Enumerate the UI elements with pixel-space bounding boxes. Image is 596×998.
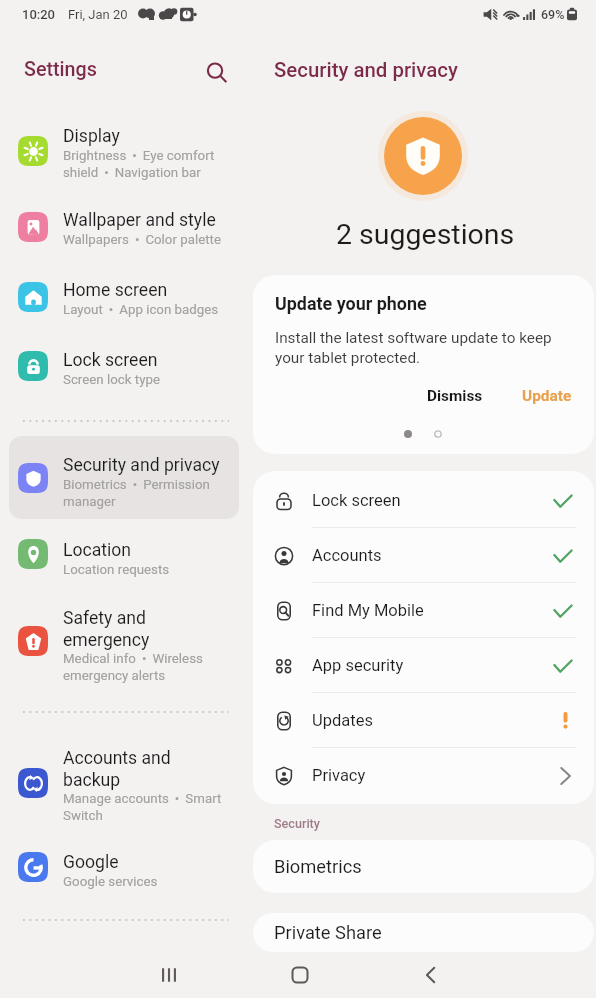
staticText: Home screen xyxy=(63,280,168,301)
staticText: 2 suggestions xyxy=(336,218,515,251)
staticText: Security and privacy xyxy=(63,455,220,476)
button[interactable]: Privacy xyxy=(253,748,594,803)
staticText: Medical info • Wireless emergency alerts xyxy=(63,651,203,683)
button[interactable]: App security xyxy=(253,638,594,693)
staticText: 10:20 xyxy=(22,7,56,22)
staticText: Settings xyxy=(24,58,97,81)
staticText: Accounts xyxy=(312,546,382,565)
button[interactable] xyxy=(9,746,239,820)
staticText: App security xyxy=(312,656,404,675)
button[interactable] xyxy=(9,830,239,904)
button[interactable]: Accounts xyxy=(253,528,594,583)
staticText: Lock screen xyxy=(63,350,158,371)
staticText: Privacy xyxy=(312,766,366,785)
button[interactable]: Biometrics xyxy=(253,840,594,893)
staticText: Update your phone xyxy=(275,293,427,314)
staticText: Lock screen xyxy=(312,491,401,510)
staticText: Location xyxy=(63,540,132,561)
staticText: Screen lock type xyxy=(63,372,160,388)
staticText: Updates xyxy=(312,711,373,730)
button[interactable]: Recents xyxy=(147,953,191,997)
staticText: Dismiss xyxy=(427,387,483,405)
button[interactable]: Updates xyxy=(253,693,594,748)
staticText: Display xyxy=(63,126,120,147)
staticText: Biometrics xyxy=(274,856,362,877)
button[interactable]: Dismiss xyxy=(421,382,489,410)
staticText: Manage accounts • Smart Switch xyxy=(63,791,222,823)
staticText: Biometrics • Permission manager xyxy=(63,477,210,509)
staticText: Private Share xyxy=(274,922,382,943)
button[interactable]: Update xyxy=(516,382,578,410)
staticText: Google xyxy=(63,852,119,873)
staticText: 69% xyxy=(541,7,565,22)
staticText: Brightness • Eye comfort shield • Naviga… xyxy=(63,148,215,180)
staticText: Install the latest software update to ke… xyxy=(275,329,552,367)
staticText: Location requests xyxy=(63,562,170,578)
button[interactable]: Home xyxy=(278,953,322,997)
staticText: Wallpapers • Color palette xyxy=(63,232,221,248)
button[interactable]: Lock screen xyxy=(253,473,594,528)
staticText: Google services xyxy=(63,874,158,890)
button[interactable]: Find My Mobile xyxy=(253,583,594,638)
staticText: Security xyxy=(274,816,320,831)
button[interactable]: Search xyxy=(198,54,234,90)
button[interactable] xyxy=(9,441,239,515)
button[interactable] xyxy=(9,260,239,334)
button[interactable] xyxy=(9,329,239,403)
button[interactable]: Private Share xyxy=(253,913,594,952)
button[interactable] xyxy=(9,114,239,188)
button[interactable]: Back xyxy=(408,953,452,997)
staticText: Wallpaper and style xyxy=(63,210,216,231)
staticText: Fri, Jan 20 xyxy=(68,7,128,22)
button[interactable] xyxy=(9,190,239,264)
button[interactable] xyxy=(9,517,239,591)
staticText: Update xyxy=(522,387,572,405)
staticText: Safety and emergency xyxy=(63,608,150,650)
staticText: Accounts and backup xyxy=(63,748,171,790)
staticText: Find My Mobile xyxy=(312,601,424,620)
staticText: Layout • App icon badges xyxy=(63,302,219,318)
staticText: Security and privacy xyxy=(274,58,458,82)
button[interactable] xyxy=(9,604,239,678)
